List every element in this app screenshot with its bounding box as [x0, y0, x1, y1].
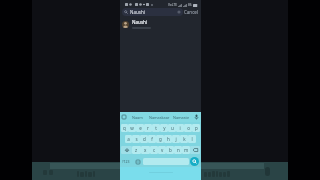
- staticText: g: [159, 136, 162, 142]
- staticText: Cancel: [184, 9, 198, 15]
- button[interactable]: x: [141, 146, 150, 154]
- button[interactable]: ?123: [121, 157, 130, 166]
- staticText: d: [143, 136, 146, 142]
- button[interactable]: h: [164, 135, 172, 143]
- staticText: Naam: [132, 115, 143, 120]
- staticText: v: [161, 147, 164, 153]
- button[interactable]: Naushi: [122, 8, 183, 16]
- button[interactable]: c: [150, 146, 158, 154]
- staticText: y: [163, 125, 166, 131]
- button[interactable]: Keyboard settings: [122, 115, 126, 119]
- button[interactable]: Shift: [121, 146, 132, 154]
- button[interactable]: e: [136, 124, 144, 132]
- button[interactable]: r: [144, 124, 152, 132]
- button[interactable]: Naushi: [120, 18, 201, 30]
- staticText: a: [127, 136, 130, 142]
- staticText: Naushi: [130, 9, 145, 15]
- button[interactable]: p: [192, 124, 200, 132]
- staticText: ?123: [122, 159, 130, 164]
- button[interactable]: Voice input: [194, 114, 199, 120]
- button[interactable]: a: [125, 135, 132, 143]
- button[interactable]: t: [152, 124, 160, 132]
- button[interactable]: d: [140, 135, 148, 143]
- staticText: Naushi: [132, 19, 148, 25]
- staticText: i: [179, 125, 181, 131]
- staticText: s: [135, 136, 138, 142]
- staticText: e: [139, 125, 142, 131]
- staticText: VoLTE: [168, 3, 177, 7]
- staticText: j: [175, 136, 177, 142]
- staticText: l: [191, 136, 193, 142]
- staticText: k: [183, 136, 186, 142]
- staticText: x: [144, 147, 147, 153]
- button[interactable]: z: [132, 146, 141, 154]
- button[interactable]: y: [160, 124, 168, 132]
- button[interactable]: i: [176, 124, 184, 132]
- button[interactable]: v: [158, 146, 166, 154]
- staticText: Namaskaar: [149, 115, 170, 120]
- staticText: t: [155, 125, 157, 131]
- button[interactable]: l: [188, 135, 196, 143]
- button[interactable]: u: [168, 124, 176, 132]
- staticText: 86: [188, 3, 192, 7]
- staticText: z: [135, 147, 138, 153]
- button[interactable]: q: [121, 124, 128, 132]
- staticText: b: [169, 147, 172, 153]
- button[interactable]: s: [132, 135, 140, 143]
- staticText: m: [184, 147, 189, 153]
- staticText: r: [147, 125, 149, 131]
- staticText: q: [123, 125, 126, 131]
- button[interactable]: Backspace: [190, 146, 200, 154]
- other: Clear: [177, 10, 181, 14]
- staticText: o: [187, 125, 190, 131]
- button[interactable]: m: [182, 146, 190, 154]
- button[interactable]: k: [180, 135, 188, 143]
- staticText: p: [195, 125, 198, 131]
- button[interactable]: g: [156, 135, 164, 143]
- button[interactable]: b: [166, 146, 174, 154]
- button[interactable]: w: [128, 124, 136, 132]
- button[interactable]: j: [172, 135, 180, 143]
- staticText: h: [167, 136, 170, 142]
- button[interactable]: f: [148, 135, 156, 143]
- button[interactable]: Switch language: [134, 157, 141, 166]
- button[interactable]: Search: [190, 157, 199, 166]
- button[interactable]: n: [174, 146, 182, 154]
- staticText: n: [177, 147, 180, 153]
- staticText: Namaste: [173, 115, 190, 120]
- button[interactable]: Cancel: [183, 9, 199, 15]
- staticText: u: [171, 125, 174, 131]
- button[interactable]: o: [184, 124, 192, 132]
- staticText: w: [130, 125, 134, 131]
- staticText: c: [153, 147, 156, 153]
- staticText: f: [151, 136, 153, 142]
